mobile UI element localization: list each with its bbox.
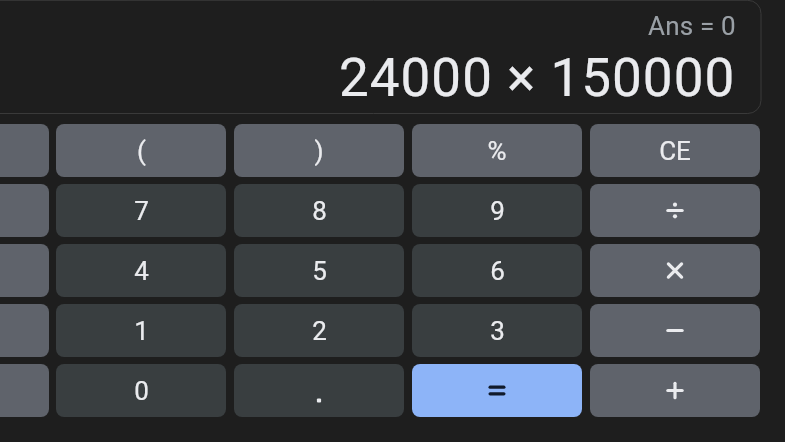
staticText: 24000 × 150000 (339, 47, 736, 109)
button[interactable]: 1 (56, 304, 226, 357)
button[interactable]: 9 (412, 184, 582, 237)
button[interactable]: e (0, 364, 49, 417)
button[interactable]: % (412, 124, 582, 177)
staticText: 2 (312, 316, 327, 346)
button[interactable]: √ (0, 244, 49, 297)
button[interactable]: CE (590, 124, 760, 177)
button[interactable]: Divide (590, 184, 760, 237)
button[interactable]: 5 (234, 244, 404, 297)
staticText: 9 (490, 196, 505, 226)
staticText: CE (659, 136, 691, 166)
staticText: 6 (490, 256, 505, 286)
button[interactable]: ( (56, 124, 226, 177)
button[interactable]: 0 (56, 364, 226, 417)
staticText: Ans = 0 (648, 11, 736, 41)
staticText: ( (137, 136, 146, 166)
staticText: ) (314, 136, 324, 166)
button[interactable]: Decimal point (234, 364, 404, 417)
button[interactable]: 8 (234, 184, 404, 237)
staticText: 7 (134, 196, 149, 226)
staticText: 4 (134, 256, 149, 286)
button[interactable]: Equals (412, 364, 582, 417)
button[interactable]: ) (234, 124, 404, 177)
staticText: 8 (312, 196, 327, 226)
button[interactable]: 3 (412, 304, 582, 357)
button[interactable]: Minus (590, 304, 760, 357)
staticText: % (487, 136, 507, 166)
staticText: 5 (312, 256, 327, 286)
button[interactable]: 4 (56, 244, 226, 297)
button[interactable]: AC (0, 124, 49, 177)
button[interactable]: x! (0, 184, 49, 237)
staticText: 3 (490, 316, 505, 346)
button[interactable]: 6 (412, 244, 582, 297)
button[interactable]: 2 (234, 304, 404, 357)
button[interactable]: Multiply (590, 244, 760, 297)
button[interactable]: Plus (590, 364, 760, 417)
staticText: 0 (134, 376, 149, 406)
button[interactable]: 7 (56, 184, 226, 237)
staticText: 1 (134, 316, 149, 346)
button[interactable]: π (0, 304, 49, 357)
